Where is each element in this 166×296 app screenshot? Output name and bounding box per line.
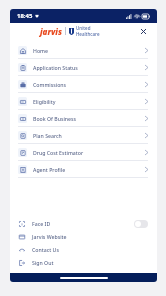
button[interactable]: Plan Search (10, 127, 157, 144)
button[interactable]: Face ID (10, 217, 157, 230)
button[interactable]: Drug Cost Estimator (10, 144, 157, 161)
staticText: Home (33, 47, 48, 54)
staticText: Plan Search (33, 132, 62, 139)
staticText: Healthcare (76, 31, 100, 37)
staticText: 18:45 (17, 12, 33, 20)
staticText: Jarvis Website (32, 233, 67, 240)
button[interactable]: Face ID toggle (134, 220, 148, 228)
staticText: Book Of Business (33, 115, 77, 122)
button[interactable]: Close (137, 25, 149, 37)
button[interactable]: Sign Out (10, 256, 157, 269)
staticText: United (76, 25, 91, 31)
button[interactable]: Jarvis Website (10, 230, 157, 243)
staticText: Drug Cost Estimator (33, 149, 84, 156)
staticText: Commissions (33, 81, 67, 88)
button[interactable]: Agent Profile (10, 161, 157, 178)
staticText: Eligibility (33, 98, 56, 105)
staticText: Sign Out (32, 259, 54, 266)
button[interactable]: Commissions (10, 76, 157, 93)
staticText: Contact Us (32, 246, 59, 253)
staticText: Face ID (32, 220, 51, 227)
staticText: jarvis (40, 26, 62, 37)
button[interactable]: Book Of Business (10, 110, 157, 127)
button[interactable]: Home (10, 42, 157, 59)
button[interactable]: Application Status (10, 59, 157, 76)
staticText: Application Status (33, 64, 78, 71)
button[interactable]: Contact Us (10, 243, 157, 256)
button[interactable]: Eligibility (10, 93, 157, 110)
staticText: Agent Profile (33, 166, 66, 173)
